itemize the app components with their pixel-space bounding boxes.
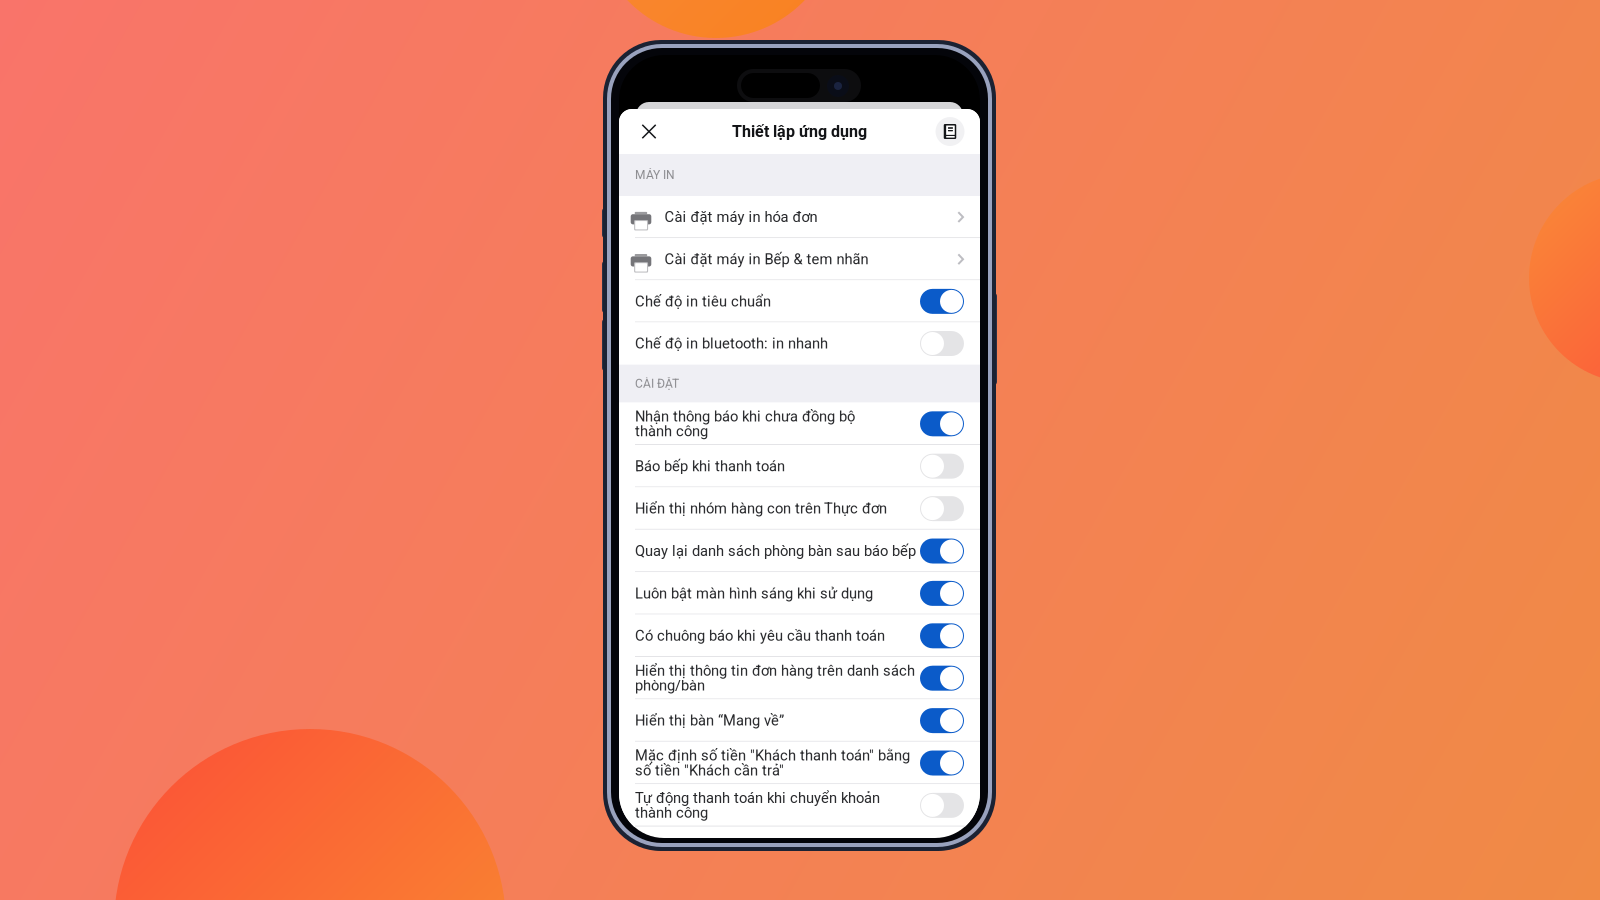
button[interactable]: Mặc định số tiền "Khách thanh toán" bằng… (619, 742, 980, 784)
staticText: Mặc định số tiền "Khách thanh toán" bằng… (635, 748, 910, 778)
button[interactable]: Quay lại danh sách phòng bàn sau báo bếp (619, 530, 980, 572)
staticText: Hiển thị thông tin đơn hàng trên danh sá… (635, 663, 915, 693)
staticText: Cài đặt máy in hóa đơn (664, 210, 817, 224)
staticText: Hiển thị nhóm hàng con trên Thực đơn (635, 501, 887, 516)
button[interactable]: Có chuông báo khi yêu cầu thanh toán (619, 615, 980, 657)
button[interactable]: Hiển thị thông tin đơn hàng trên danh sá… (619, 657, 980, 699)
staticText: CÀI ĐẶT (635, 377, 679, 391)
staticText: Quay lại danh sách phòng bàn sau báo bếp (635, 544, 916, 558)
button[interactable]: Chế độ in bluetooth: in nhanh (619, 322, 980, 365)
staticText: Luôn bật màn hình sáng khi sử dụng (635, 586, 873, 601)
button[interactable]: Tự động thanh toán khi chuyển khoản thàn… (619, 784, 980, 827)
staticText: Báo bếp khi thanh toán (635, 459, 785, 474)
button[interactable]: Luôn bật màn hình sáng khi sử dụng (619, 572, 980, 615)
staticText: Cài đặt máy in Bếp & tem nhãn (664, 252, 868, 267)
staticText: Nhận thông báo khi chưa đồng bộ thành cô… (635, 409, 855, 439)
button[interactable]: Hướng dẫn sử dụng (934, 110, 966, 152)
staticText: Chế độ in bluetooth: in nhanh (635, 336, 828, 351)
staticText: Hiển thị bàn “Mang về” (635, 713, 784, 728)
staticText: MÁY IN (635, 168, 675, 182)
button[interactable]: Báo bếp khi thanh toán (619, 445, 980, 487)
staticText: Có chuông báo khi yêu cầu thanh toán (635, 628, 885, 643)
staticText: Tự động thanh toán khi chuyển khoản thàn… (635, 791, 880, 820)
button[interactable]: Hiển thị nhóm hàng con trên Thực đơn (619, 487, 980, 530)
button[interactable]: Cài đặt máy in hóa đơn (619, 196, 980, 238)
staticText: Thiết lập ứng dụng (732, 122, 867, 141)
button[interactable]: Chế độ in tiêu chuẩn (619, 280, 980, 322)
button[interactable]: Hiển thị bàn “Mang về” (619, 699, 980, 742)
button[interactable]: Cài đặt máy in Bếp & tem nhãn (619, 238, 980, 280)
button[interactable]: Đóng (633, 110, 665, 152)
button[interactable]: Nhận thông báo khi chưa đồng bộ thành cô… (619, 403, 980, 445)
staticText: Chế độ in tiêu chuẩn (635, 294, 771, 309)
